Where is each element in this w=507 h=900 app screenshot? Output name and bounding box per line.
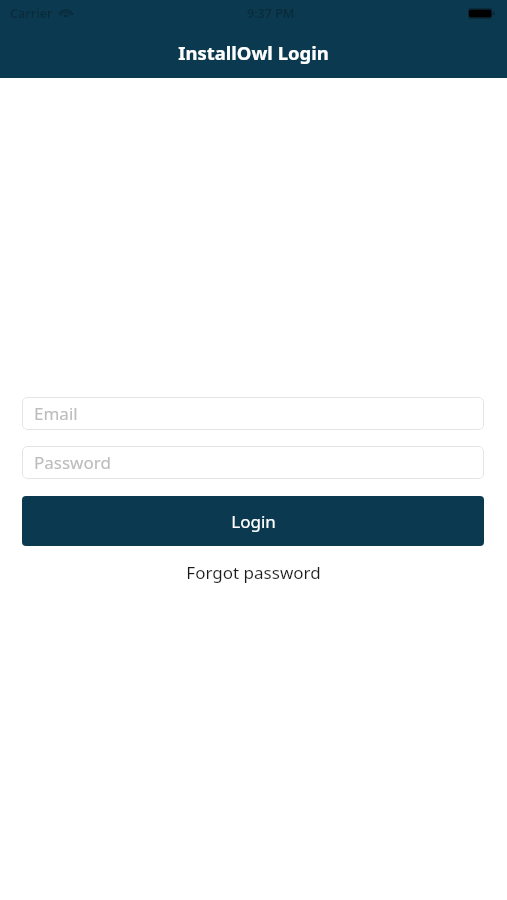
button[interactable]: Email: [22, 397, 484, 430]
staticText: Email: [34, 402, 78, 425]
staticText: Password: [34, 451, 111, 474]
button[interactable]: Forgot password: [22, 546, 484, 598]
staticText: Carrier: [10, 5, 53, 22]
button[interactable]: Login: [22, 496, 484, 546]
other: Battery full: [468, 8, 495, 19]
staticText: Forgot password: [186, 561, 321, 584]
other: Wi-Fi signal: [58, 7, 74, 19]
staticText: Login: [231, 510, 276, 533]
button[interactable]: Password: [22, 446, 484, 479]
staticText: InstallOwl Login: [178, 40, 329, 65]
staticText: 9:37 PM: [247, 5, 295, 22]
